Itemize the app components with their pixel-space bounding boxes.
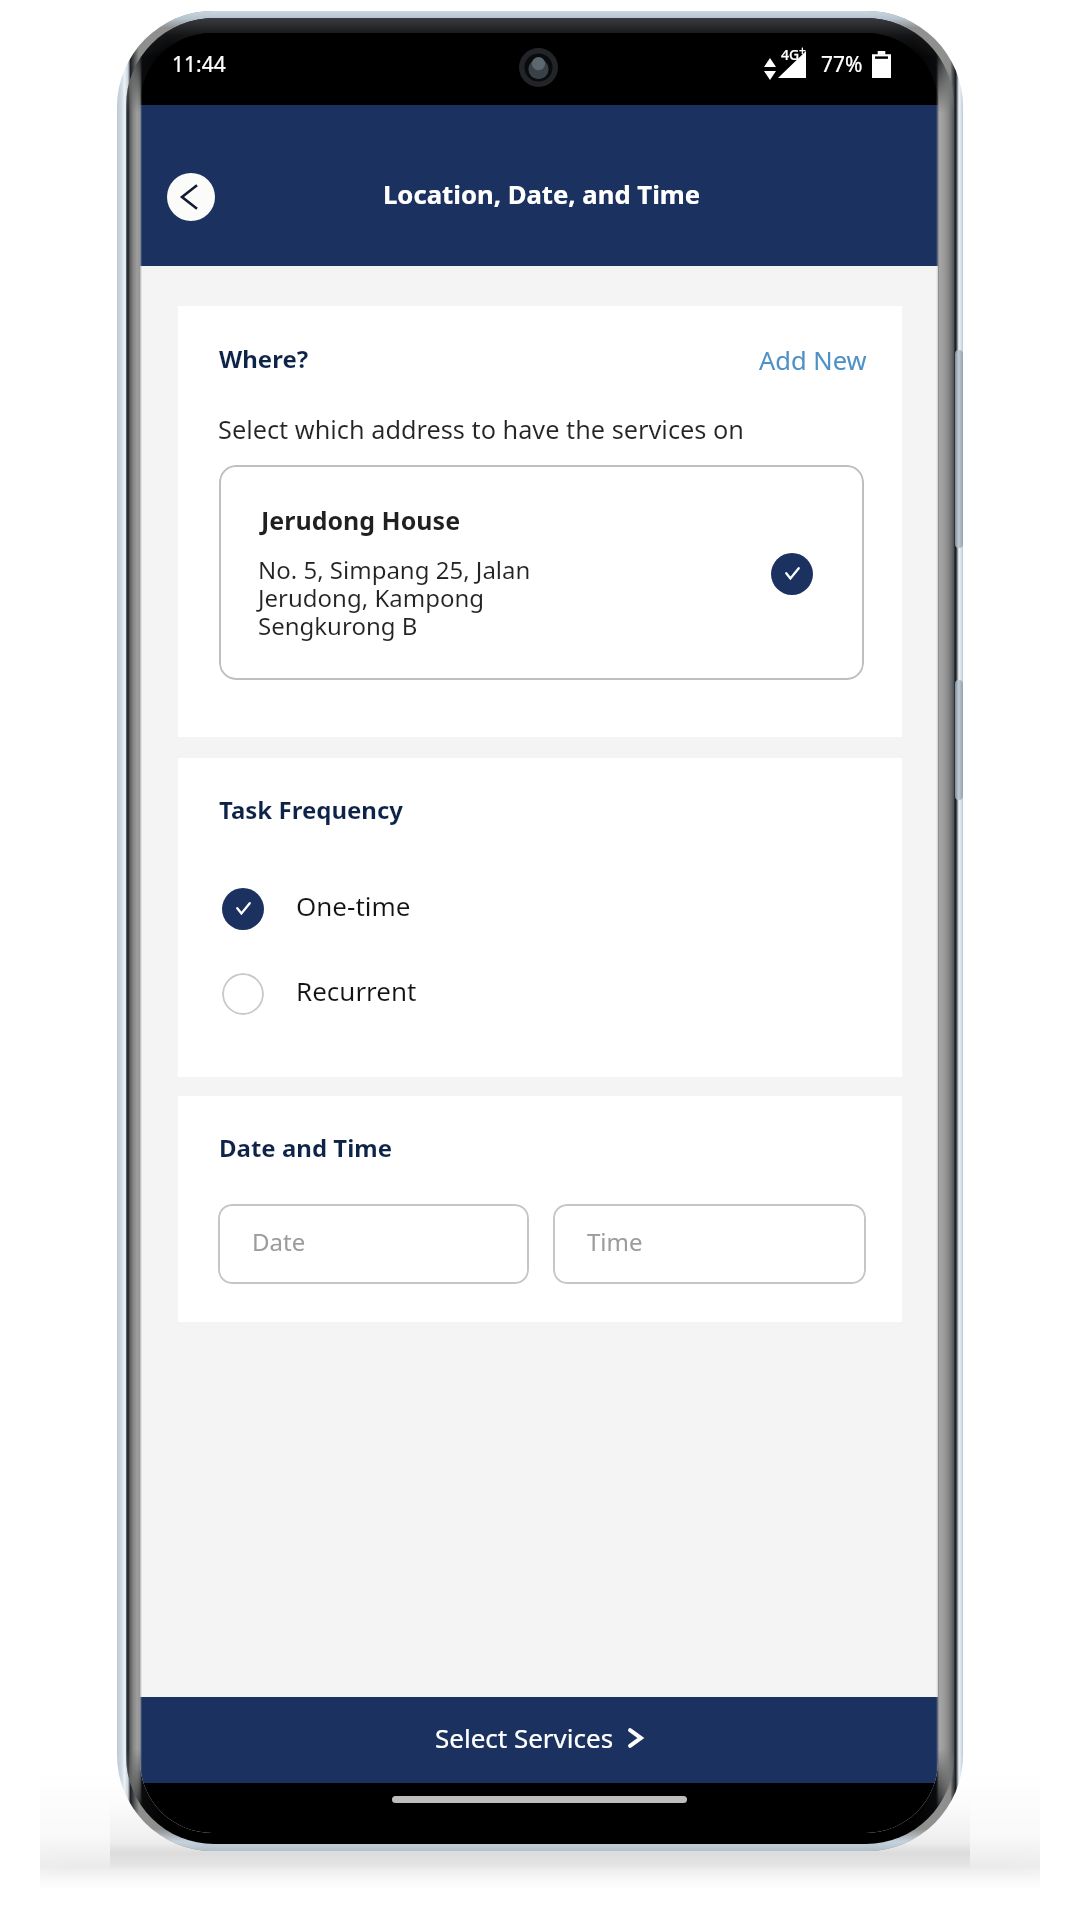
staticText: 11:44 <box>172 50 226 79</box>
staticText: One-time <box>296 888 411 923</box>
button[interactable]: Select Services <box>140 1697 938 1783</box>
staticText: Add New <box>759 343 867 378</box>
staticText: Time <box>587 1225 643 1258</box>
button[interactable]: Jerudong House <box>219 465 864 680</box>
staticText: Jerudong House <box>261 503 461 537</box>
staticText: Select Services <box>435 1720 614 1755</box>
staticText: Location, Date, and Time <box>383 177 701 212</box>
staticText: Task Frequency <box>219 793 404 826</box>
button[interactable]: Time <box>553 1204 866 1284</box>
staticText: Recurrent <box>296 973 417 1008</box>
staticText: + <box>799 42 806 58</box>
button[interactable]: Add New <box>759 343 867 378</box>
staticText: Where? <box>219 342 309 375</box>
button[interactable]: One-time <box>202 883 602 935</box>
staticText: 4G <box>781 45 800 64</box>
button[interactable]: Back <box>167 173 215 221</box>
button[interactable]: Recurrent <box>202 968 602 1020</box>
staticText: Date <box>252 1225 306 1258</box>
button[interactable]: Date <box>218 1204 529 1284</box>
staticText: No. 5, Simpang 25, Jalan Jerudong, Kampo… <box>258 553 531 642</box>
staticText: Date and Time <box>219 1131 393 1164</box>
staticText: Select which address to have the service… <box>218 412 744 446</box>
staticText: 77% <box>821 50 863 79</box>
